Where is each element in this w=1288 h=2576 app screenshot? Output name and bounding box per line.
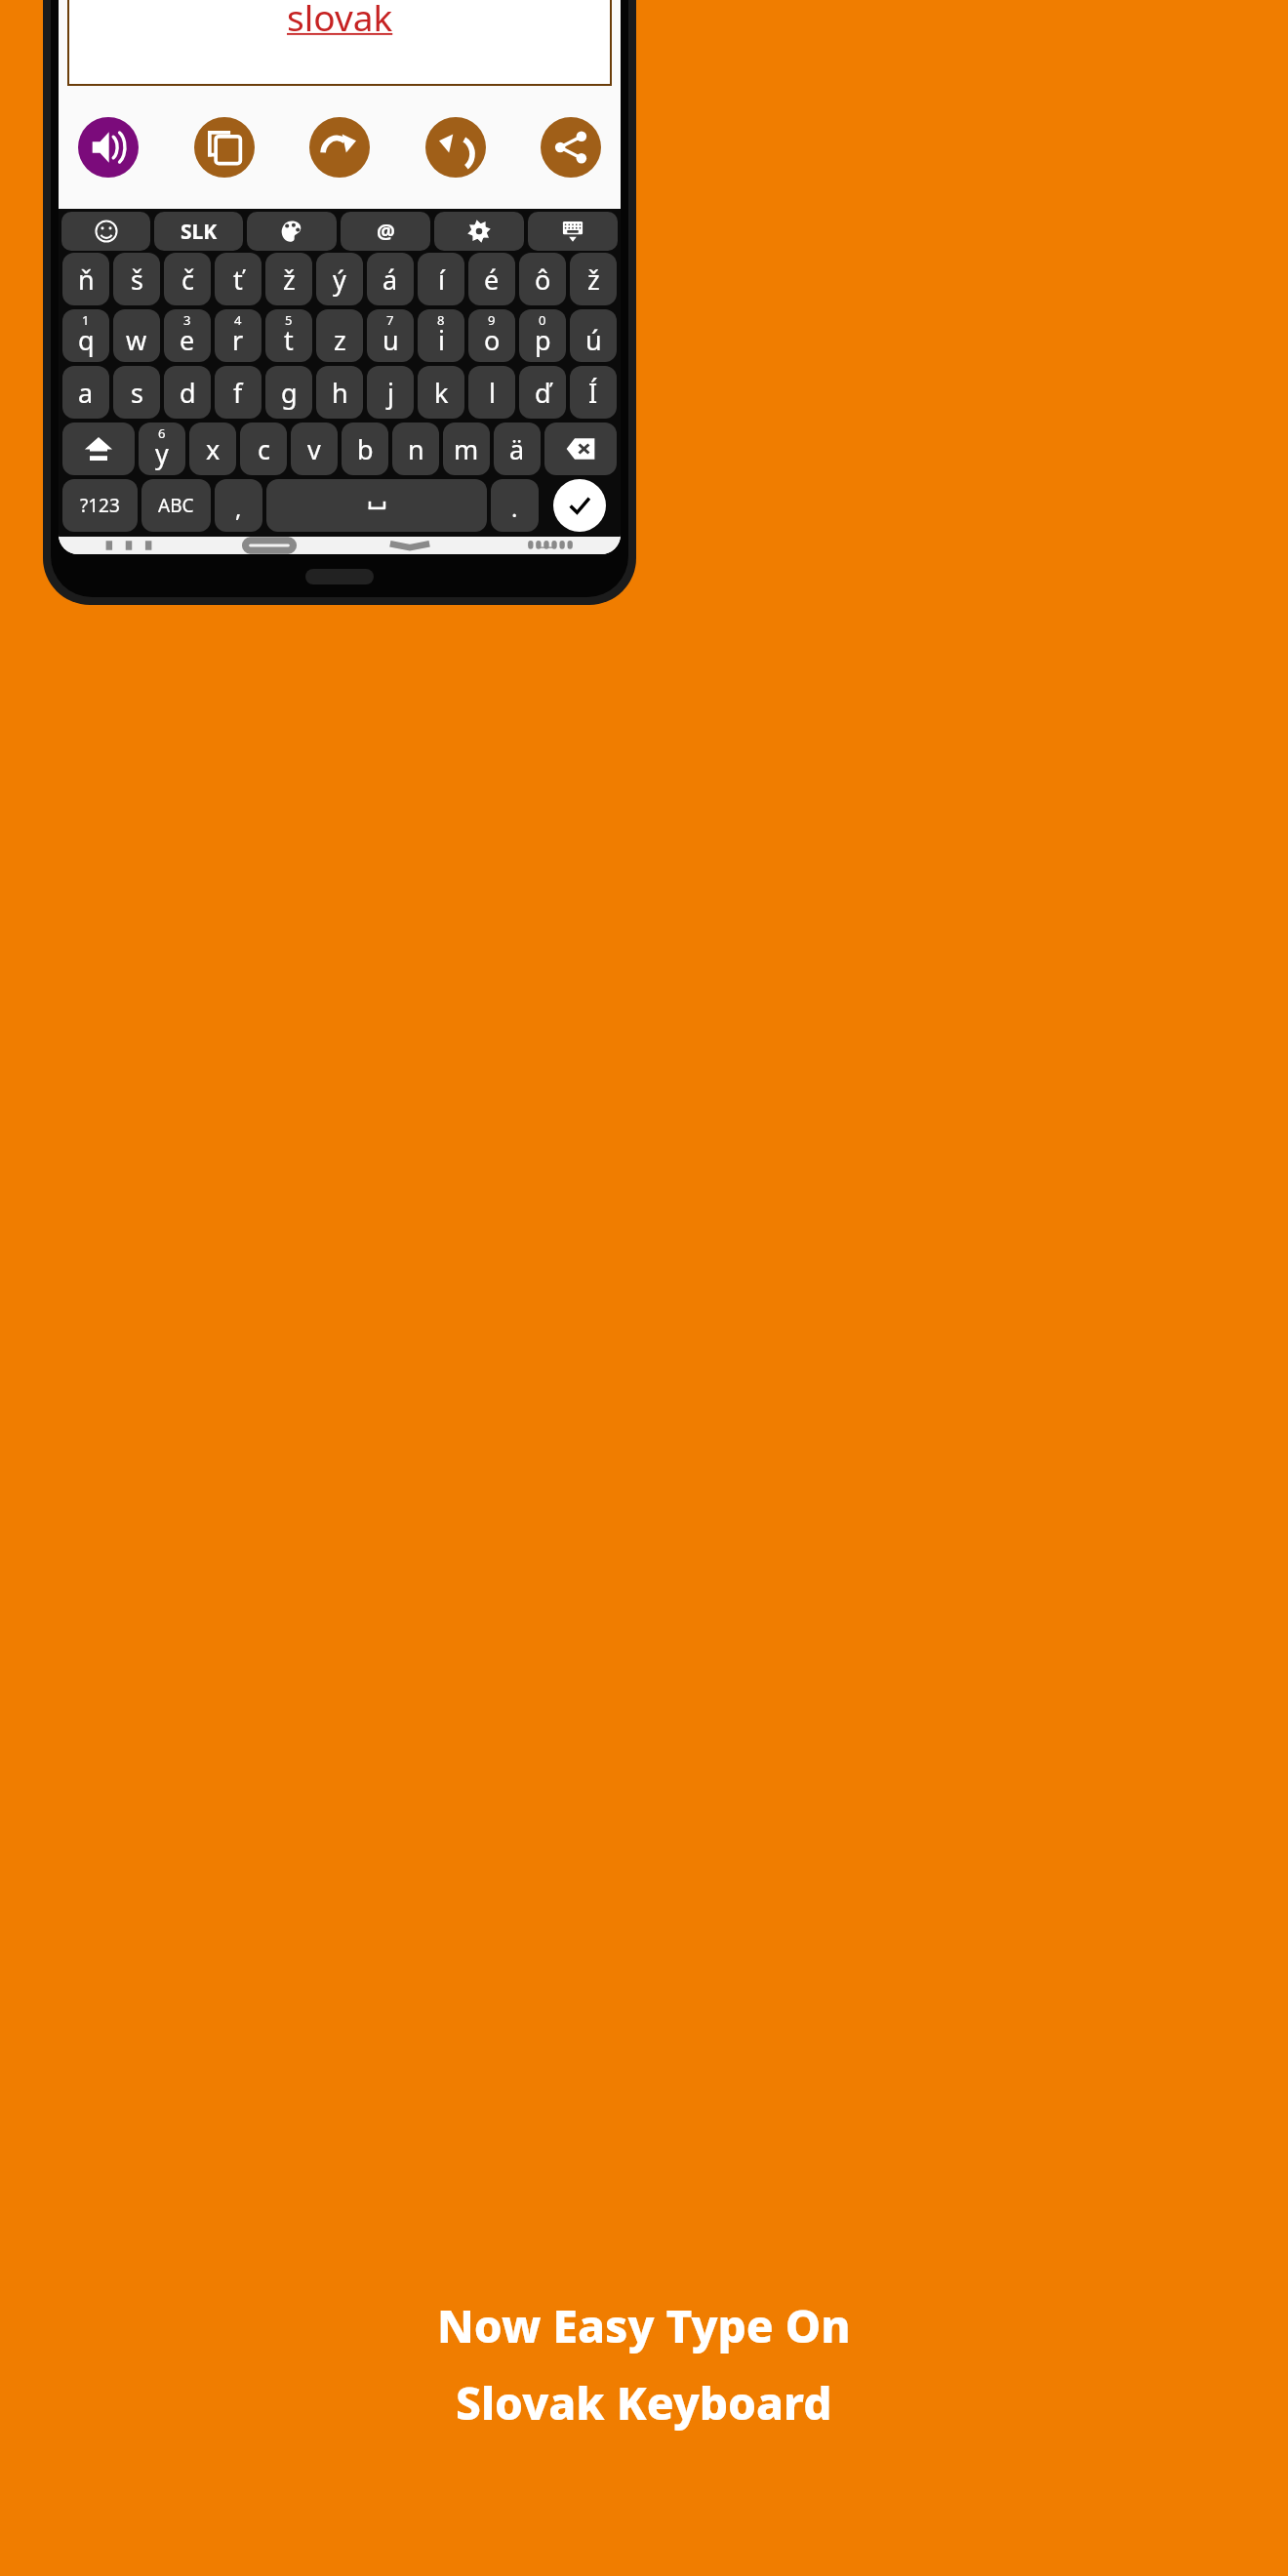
button[interactable]: ú <box>570 309 617 362</box>
staticText: Slovak Keyboard <box>456 2372 832 2434</box>
staticText: g <box>281 375 298 411</box>
button[interactable]: h <box>316 366 363 419</box>
staticText: é <box>484 262 500 298</box>
button[interactable]: á <box>367 253 414 305</box>
button[interactable]: Hide keyboard <box>340 537 480 554</box>
staticText: 1 <box>82 311 90 329</box>
button[interactable]: Undo <box>425 117 486 178</box>
button[interactable]: 9 <box>468 309 515 362</box>
staticText: y <box>155 435 169 471</box>
staticText: 0 <box>539 311 546 329</box>
button[interactable]: ť <box>215 253 262 305</box>
button[interactable]: ž <box>570 253 617 305</box>
button[interactable]: Shift <box>62 423 135 475</box>
button[interactable]: Redo <box>309 117 370 178</box>
button[interactable]: ď <box>519 366 566 419</box>
staticText: SLK <box>181 218 218 246</box>
staticText: ABC <box>158 493 194 518</box>
button[interactable]: b <box>342 423 388 475</box>
button[interactable]: ä <box>494 423 541 475</box>
button[interactable]: š <box>113 253 160 305</box>
button[interactable]: Enter <box>553 479 606 532</box>
button[interactable]: . <box>491 479 539 532</box>
button[interactable]: s <box>113 366 160 419</box>
staticText: n <box>408 431 424 467</box>
staticText: 4 <box>234 311 242 329</box>
button[interactable]: a <box>62 366 109 419</box>
staticText: ý <box>333 262 346 298</box>
button[interactable]: 3 <box>164 309 211 362</box>
button[interactable]: d <box>164 366 211 419</box>
button[interactable]: Share <box>541 117 601 178</box>
button[interactable]: 6 <box>139 423 185 475</box>
button[interactable]: Theme <box>247 212 337 251</box>
button[interactable]: 0 <box>519 309 566 362</box>
staticText: ä <box>509 431 525 467</box>
staticText: š <box>131 262 143 298</box>
button[interactable]: Settings <box>434 212 524 251</box>
button[interactable]: ô <box>519 253 566 305</box>
button[interactable]: c <box>240 423 287 475</box>
staticText: ď <box>535 375 551 411</box>
staticText: Now Easy Type On <box>437 2295 851 2356</box>
staticText: m <box>454 431 479 467</box>
button[interactable]: ň <box>62 253 109 305</box>
staticText: ?123 <box>80 493 120 518</box>
button[interactable]: g <box>265 366 312 419</box>
staticText: slovak <box>287 0 393 41</box>
button[interactable]: k <box>418 366 464 419</box>
button[interactable]: Space <box>266 479 487 532</box>
staticText: u <box>382 322 399 358</box>
button[interactable]: Copy <box>194 117 255 178</box>
button[interactable]: Switch keyboard <box>480 537 621 554</box>
button[interactable]: 7 <box>367 309 414 362</box>
button[interactable]: x <box>189 423 236 475</box>
button[interactable]: é <box>468 253 515 305</box>
button[interactable]: j <box>367 366 414 419</box>
button[interactable] <box>67 0 612 86</box>
button[interactable]: Emoji <box>61 212 150 251</box>
button[interactable]: 1 <box>62 309 109 362</box>
staticText: č <box>181 262 194 298</box>
staticText: ň <box>78 262 95 298</box>
staticText: p <box>535 322 551 358</box>
button[interactable]: z <box>316 309 363 362</box>
staticText: 9 <box>488 311 496 329</box>
button[interactable]: ABC <box>141 479 211 532</box>
button[interactable]: @ <box>341 212 430 251</box>
button[interactable]: ?123 <box>62 479 138 532</box>
button[interactable]: ž <box>265 253 312 305</box>
button[interactable]: w <box>113 309 160 362</box>
button[interactable]: m <box>443 423 490 475</box>
staticText: i <box>438 322 445 358</box>
button[interactable]: SLK <box>154 212 243 251</box>
button[interactable]: 5 <box>265 309 312 362</box>
button[interactable]: , <box>215 479 262 532</box>
button[interactable]: f <box>215 366 262 419</box>
staticText: s <box>131 375 143 411</box>
staticText: c <box>258 431 270 467</box>
button[interactable]: Í <box>570 366 617 419</box>
staticText: 7 <box>386 311 394 329</box>
button[interactable]: Backspace <box>544 423 617 475</box>
button[interactable]: Recents <box>59 537 199 554</box>
button[interactable]: 4 <box>215 309 262 362</box>
staticText: a <box>78 375 94 411</box>
button[interactable]: í <box>418 253 464 305</box>
button[interactable]: č <box>164 253 211 305</box>
staticText: e <box>180 322 195 358</box>
staticText: o <box>484 322 501 358</box>
button[interactable]: ý <box>316 253 363 305</box>
staticText: 3 <box>183 311 191 329</box>
button[interactable]: l <box>468 366 515 419</box>
staticText: 6 <box>158 424 166 442</box>
staticText: q <box>78 322 95 358</box>
button[interactable]: v <box>291 423 338 475</box>
button[interactable]: Speak <box>78 117 139 178</box>
staticText: r <box>232 322 244 358</box>
button[interactable]: 8 <box>418 309 464 362</box>
button[interactable]: Home <box>199 537 340 554</box>
staticText: ť <box>233 262 243 298</box>
button[interactable]: n <box>392 423 439 475</box>
button[interactable]: Layout <box>528 212 618 251</box>
